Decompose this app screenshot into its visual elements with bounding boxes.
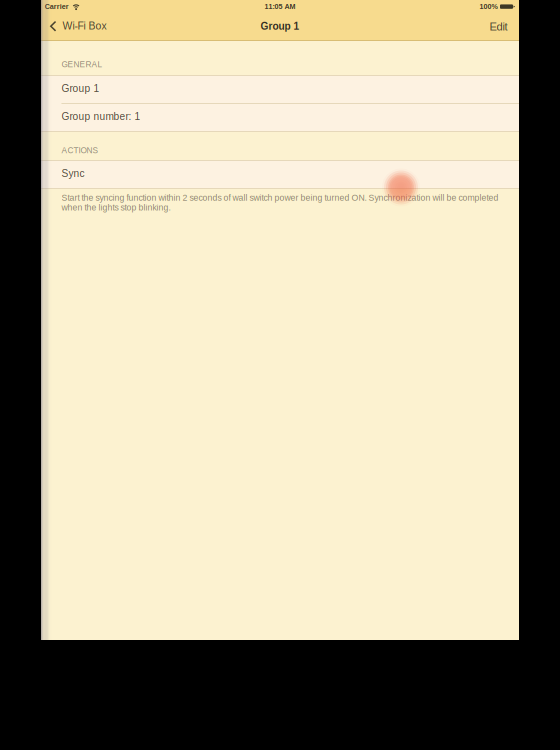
staticText: Edit bbox=[489, 20, 507, 33]
staticText: GENERAL bbox=[61, 60, 102, 69]
button[interactable]: Wi-Fi Box bbox=[41, 20, 112, 37]
staticText: Group 1 bbox=[260, 21, 299, 32]
button[interactable]: Sync bbox=[41, 161, 519, 188]
staticText: Start the syncing function within 2 seco… bbox=[61, 193, 498, 212]
staticText: 11:05 AM bbox=[264, 3, 295, 11]
staticText: Carrier bbox=[45, 3, 69, 11]
button[interactable]: Edit bbox=[479, 20, 519, 38]
staticText: ACTIONS bbox=[61, 146, 98, 155]
staticText: Sync bbox=[61, 168, 84, 179]
staticText: Group 1 bbox=[61, 83, 99, 94]
button[interactable]: Group number: 1 bbox=[41, 104, 519, 131]
staticText: Group number: 1 bbox=[61, 111, 140, 122]
staticText: 100% bbox=[479, 3, 497, 11]
staticText: Wi-Fi Box bbox=[62, 20, 106, 32]
button[interactable]: Group 1 bbox=[41, 76, 519, 103]
